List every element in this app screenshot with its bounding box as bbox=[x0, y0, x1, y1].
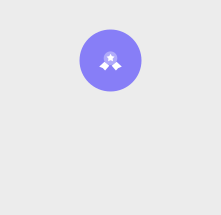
button[interactable]: Award bbox=[79, 29, 141, 91]
